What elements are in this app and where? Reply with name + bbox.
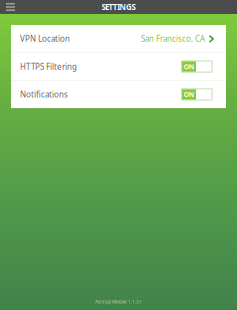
staticText: San Francisco, CA xyxy=(141,33,205,44)
button[interactable]: VPN Location xyxy=(11,25,226,52)
staticText: Notifications xyxy=(20,89,68,100)
button[interactable]: Menu xyxy=(0,0,21,14)
staticText: AdTrap Mobile 1.1.51 xyxy=(95,298,142,305)
button[interactable]: Notifications xyxy=(11,81,226,108)
staticText: ON xyxy=(184,90,194,99)
button[interactable]: HTTPS Filtering xyxy=(11,53,226,80)
staticText: ON xyxy=(184,62,194,71)
staticText: HTTPS Filtering xyxy=(20,61,77,72)
staticText: VPN Location xyxy=(20,33,70,44)
staticText: SETTINGS xyxy=(102,2,135,12)
